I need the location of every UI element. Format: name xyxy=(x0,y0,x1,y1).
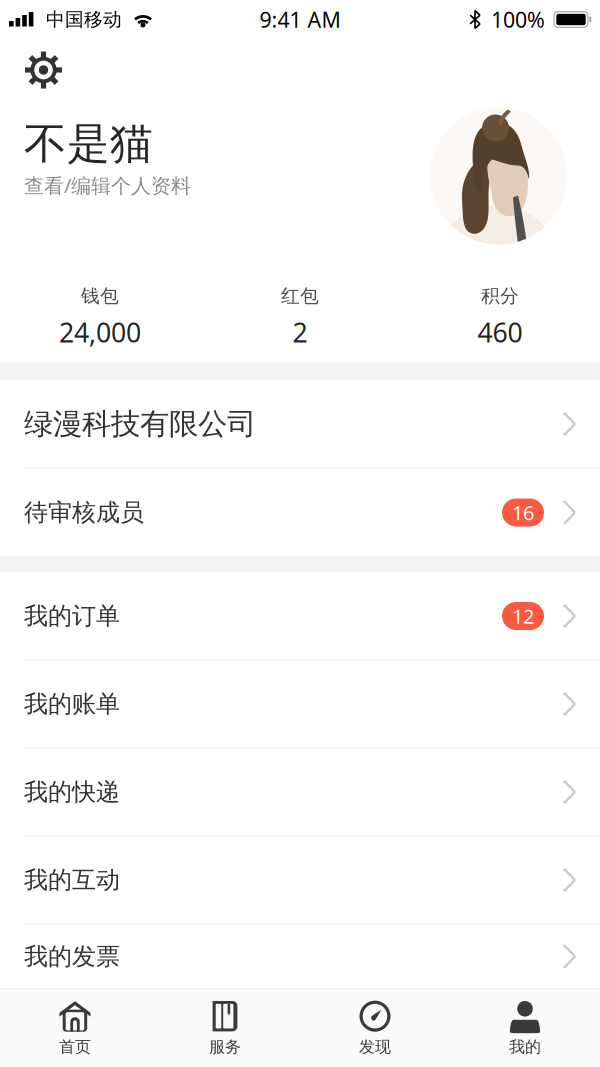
button[interactable]: 我的订单 xyxy=(0,572,600,660)
button[interactable]: 积分 xyxy=(400,284,600,350)
button[interactable]: 我的快递 xyxy=(0,748,600,836)
staticText: 首页 xyxy=(59,1037,91,1057)
staticText: 我的发票 xyxy=(24,942,120,971)
staticText: 积分 xyxy=(481,284,519,307)
staticText: 查看/编辑个人资料 xyxy=(24,172,191,198)
staticText: 我的互动 xyxy=(24,865,120,895)
staticText: 9:41 AM xyxy=(259,5,340,34)
staticText: 待审核成员 xyxy=(24,498,144,527)
button[interactable]: Settings xyxy=(0,39,73,99)
staticText: 12 xyxy=(512,603,534,629)
staticText: 460 xyxy=(477,314,522,350)
staticText: 24,000 xyxy=(59,314,141,350)
button[interactable]: 绿漫科技有限公司 xyxy=(0,380,600,468)
button[interactable]: 待审核成员 xyxy=(0,468,600,556)
staticText: 服务 xyxy=(209,1037,241,1057)
button[interactable]: 钱包 xyxy=(0,284,200,350)
staticText: 16 xyxy=(512,499,534,526)
staticText: 我的订单 xyxy=(24,601,120,631)
button[interactable]: 我的账单 xyxy=(0,660,600,748)
button[interactable]: 红包 xyxy=(200,284,400,350)
button[interactable]: 首页 xyxy=(0,989,150,1067)
staticText: 100% xyxy=(491,5,545,34)
staticText: 2 xyxy=(292,314,307,350)
button[interactable]: 服务 xyxy=(150,989,300,1067)
staticText: 我的快递 xyxy=(24,777,120,807)
button[interactable]: 不是猫 xyxy=(0,99,211,208)
button[interactable]: 我的发票 xyxy=(0,924,600,988)
button[interactable]: 发现 xyxy=(300,989,450,1067)
staticText: 绿漫科技有限公司 xyxy=(24,406,256,442)
staticText: 红包 xyxy=(281,284,319,307)
staticText: 我的账单 xyxy=(24,689,120,719)
staticText: 钱包 xyxy=(81,284,119,307)
staticText: 中国移动 xyxy=(46,8,122,31)
staticText: 发现 xyxy=(359,1037,391,1057)
button[interactable]: Profile photo xyxy=(430,39,600,244)
button[interactable]: 我的 xyxy=(450,989,600,1067)
button[interactable]: 我的互动 xyxy=(0,836,600,924)
staticText: 不是猫 xyxy=(24,117,153,170)
staticText: 我的 xyxy=(509,1037,541,1057)
